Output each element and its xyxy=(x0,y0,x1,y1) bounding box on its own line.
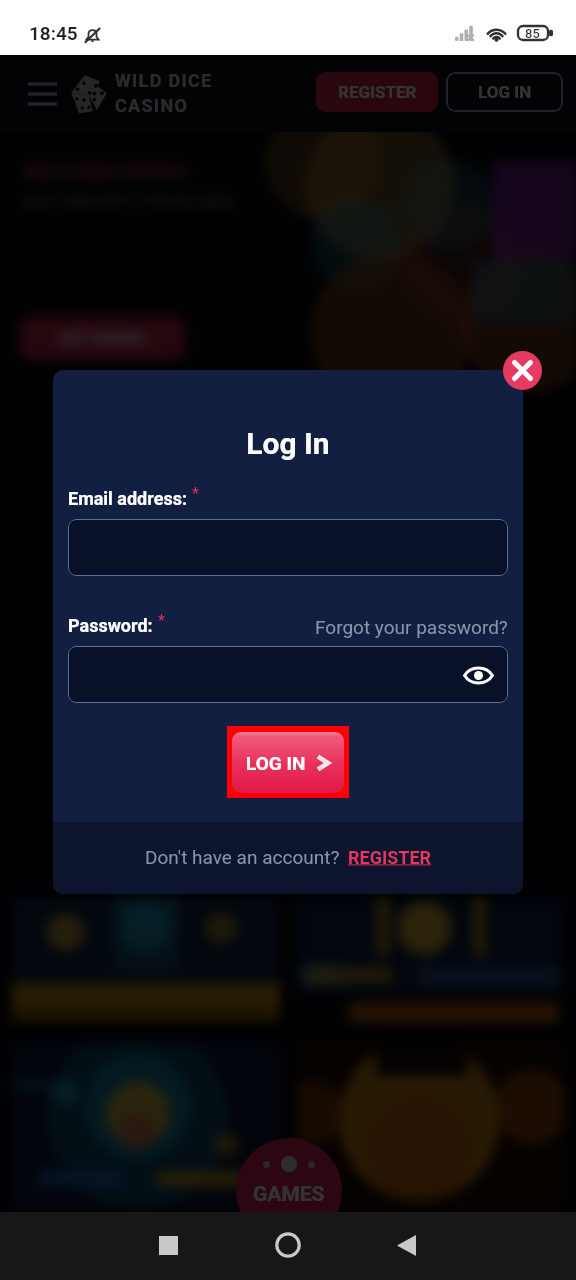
button[interactable]: REGISTER xyxy=(316,72,438,112)
button[interactable] xyxy=(12,1042,280,1212)
staticText: Password: xyxy=(68,615,153,636)
button[interactable]: LOG IN xyxy=(446,72,563,112)
staticText: Don't have an account? xyxy=(145,846,340,868)
button[interactable]: Home xyxy=(260,1217,316,1273)
button[interactable]: Recent apps xyxy=(140,1217,196,1273)
staticText: GAMES xyxy=(253,1182,325,1207)
button[interactable] xyxy=(296,898,564,1035)
button[interactable]: GAMES xyxy=(236,1138,342,1244)
button[interactable] xyxy=(68,519,508,576)
staticText: 85 xyxy=(525,26,540,41)
staticText: 18:45 xyxy=(29,22,78,44)
button[interactable]: Show password xyxy=(458,655,498,695)
button[interactable]: GET BONUS xyxy=(20,317,185,359)
staticText: GET BONUS xyxy=(59,329,146,348)
button[interactable] xyxy=(12,898,280,1035)
staticText: LOG IN xyxy=(478,82,532,102)
staticText: CASINO xyxy=(115,95,189,116)
button[interactable]: Forgot your password? xyxy=(315,616,508,638)
staticText: REGISTER xyxy=(338,82,417,102)
button[interactable]: Menu xyxy=(28,81,57,105)
staticText: * xyxy=(158,611,165,630)
button[interactable]: LOG IN xyxy=(227,726,349,798)
button[interactable] xyxy=(296,1042,564,1212)
staticText: WILD DICE xyxy=(115,70,213,91)
staticText: Email address: xyxy=(68,488,187,509)
button[interactable]: Close xyxy=(503,351,542,390)
staticText: LOG IN xyxy=(246,752,306,774)
button[interactable]: Show password xyxy=(68,646,508,703)
button[interactable]: Back xyxy=(378,1217,434,1273)
button[interactable]: REGISTER xyxy=(348,847,432,868)
staticText: Log In xyxy=(53,426,523,461)
staticText: WELCOME BONUS xyxy=(22,160,188,183)
staticText: * xyxy=(192,484,199,503)
